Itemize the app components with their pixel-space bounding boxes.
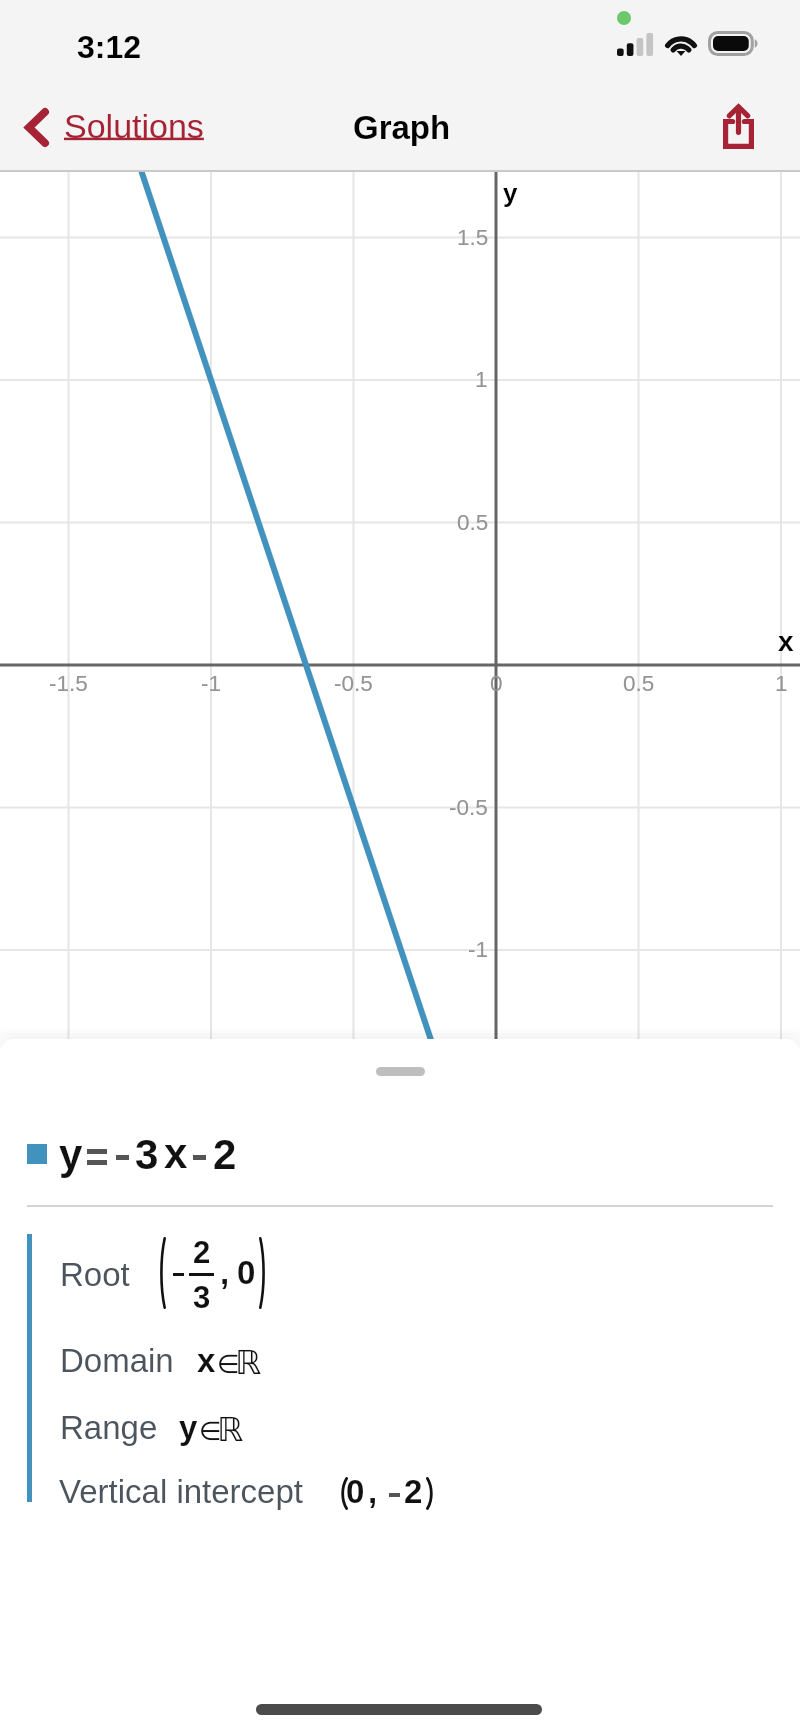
staticText: ℝ [235,1343,262,1381]
staticText: 0.5 [457,510,489,535]
staticText: Range [60,1409,158,1446]
staticText: Graph [353,109,451,146]
staticText: 1 [775,671,788,696]
staticText: -0.5 [334,671,373,696]
staticText: y [503,178,518,207]
staticText: x [164,1130,188,1177]
staticText: x [197,1342,216,1379]
staticText: -1 [201,671,222,696]
button[interactable] [20,1128,250,1180]
staticText: 1.5 [457,225,489,250]
staticText: Solutions [64,107,204,145]
staticText: Domain [60,1342,174,1379]
staticText: y [179,1409,198,1446]
staticText: x [778,626,794,657]
staticText: Root [60,1256,130,1293]
staticText: 2 [404,1473,423,1510]
staticText: ∈ [217,1349,240,1379]
staticText: 1 [475,367,488,392]
staticText: 3:12 [77,29,142,65]
button[interactable]: Share [700,94,788,166]
staticText: -0.5 [449,795,488,820]
staticText: -1.5 [49,671,88,696]
staticText: 0.5 [623,671,655,696]
staticText: 2 [193,1235,211,1270]
staticText: -1 [468,937,489,962]
staticText: 2 [213,1131,237,1178]
staticText: ℝ [217,1410,244,1448]
staticText: 0 [237,1254,256,1291]
staticText: , [220,1254,230,1291]
staticText: Vertical intercept [59,1473,303,1510]
staticText: 3 [135,1131,159,1178]
staticText: 3 [193,1280,211,1315]
staticText: , [368,1473,378,1510]
staticText: 0 [490,671,503,696]
staticText: ∈ [199,1416,222,1446]
staticText: y [59,1131,83,1178]
staticText: 0 [346,1473,365,1510]
button[interactable] [10,94,230,166]
